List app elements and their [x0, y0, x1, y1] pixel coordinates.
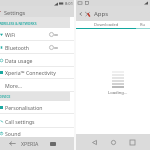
button[interactable]: Back: [91, 139, 97, 145]
button[interactable]: Back: [8, 139, 17, 148]
button[interactable]: WiFi: [0, 27, 74, 41]
button[interactable]: Sound: [0, 128, 74, 138]
staticText: Ru: [140, 22, 146, 28]
button[interactable]: Bluetooth: [0, 41, 74, 54]
button[interactable]: Personalisation: [0, 100, 74, 114]
button[interactable]: Back: [0, 6, 4, 17]
staticText: WiFi: [5, 31, 16, 38]
staticText: Sound: [5, 130, 21, 137]
staticText: Apps: [94, 10, 109, 18]
staticText: Downloaded: [94, 22, 119, 28]
button[interactable]: Recents: [129, 139, 135, 145]
staticText: XPERIA: [21, 140, 39, 147]
staticText: Xperia™ Connectivity: [5, 69, 56, 76]
staticText: Personalisation: [5, 104, 43, 111]
staticText: Call settings: [5, 118, 35, 125]
staticText: WIRELESS & NETWORKS: [0, 21, 37, 25]
button[interactable]: Back: [77, 10, 85, 18]
staticText: DEVICE: [0, 94, 11, 98]
staticText: Data usage: [5, 57, 33, 64]
button[interactable]: More...: [0, 79, 74, 92]
button[interactable]: Call settings: [0, 114, 74, 128]
button[interactable]: Data usage: [0, 54, 74, 67]
staticText: More...: [5, 82, 22, 89]
staticText: Bluetooth: [5, 44, 30, 51]
staticText: Loading...: [108, 90, 128, 96]
staticText: 8:01: [65, 1, 73, 6]
button[interactable]: Recents: [48, 139, 57, 148]
button[interactable]: Xperia™ Connectivity: [0, 66, 74, 79]
button[interactable]: Downloaded: [76, 21, 136, 29]
button[interactable]: Ru: [136, 21, 150, 29]
button[interactable]: Home: [110, 139, 116, 145]
staticText: Settings: [4, 9, 26, 17]
